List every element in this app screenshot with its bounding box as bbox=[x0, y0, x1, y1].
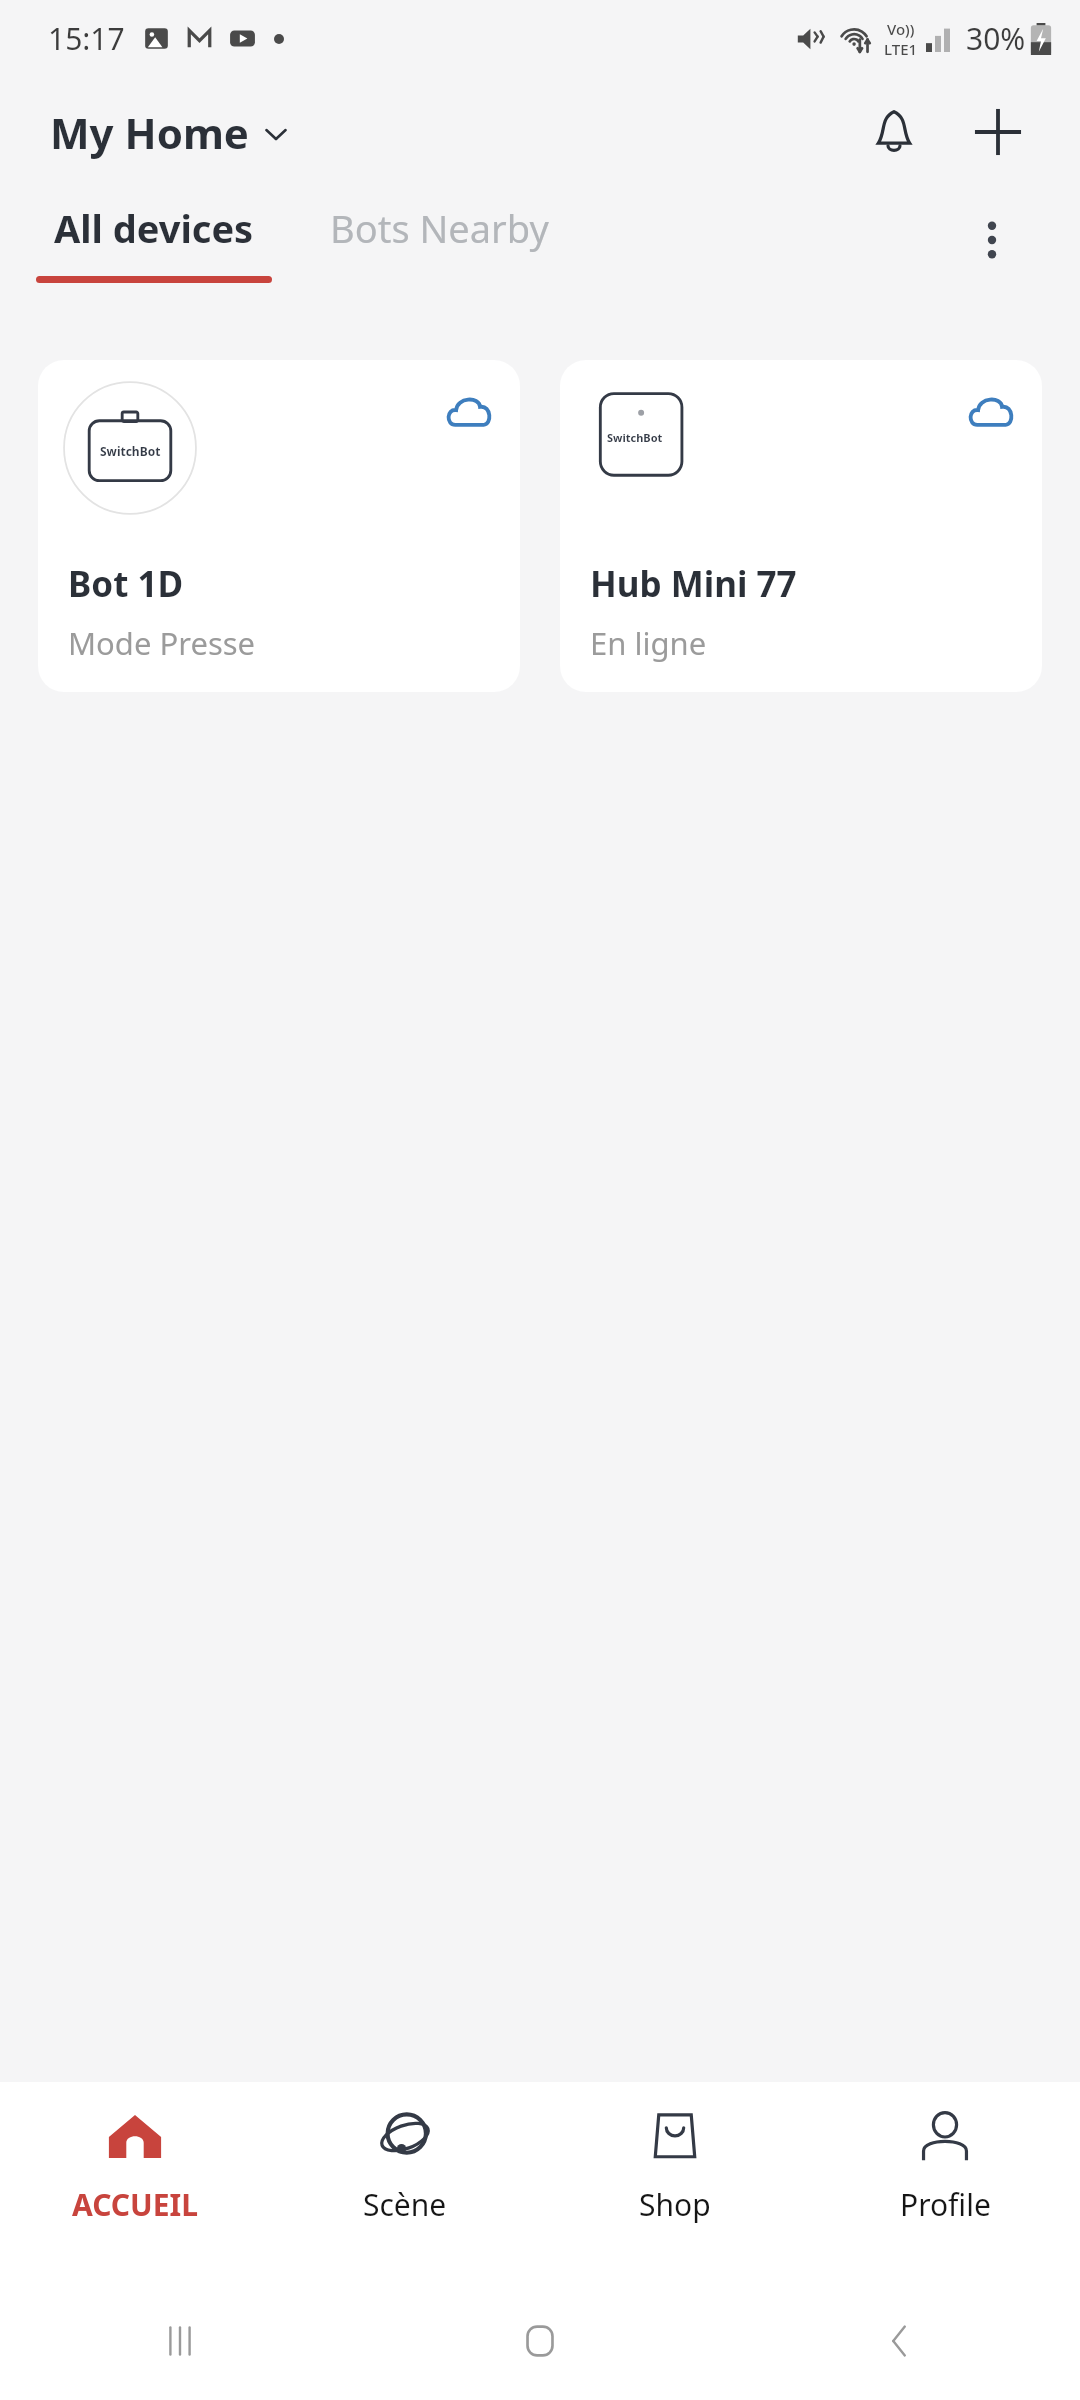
staticText: En ligne bbox=[590, 622, 707, 664]
button[interactable]: Scène bbox=[270, 2082, 540, 2225]
staticText: ACCUEIL bbox=[72, 2184, 198, 2225]
staticText: SwitchBot bbox=[607, 430, 663, 445]
staticText: Mode Presse bbox=[68, 622, 256, 664]
staticText: Hub Mini 77 bbox=[590, 560, 797, 608]
button[interactable]: All devices bbox=[0, 188, 308, 283]
staticText: Vo)) bbox=[887, 19, 915, 39]
button[interactable]: Notifications bbox=[856, 94, 932, 170]
staticText: SwitchBot bbox=[100, 443, 161, 459]
staticText: All devices bbox=[54, 202, 254, 254]
button[interactable]: My Home bbox=[0, 94, 309, 171]
button[interactable]: Bots Nearby bbox=[308, 188, 571, 254]
button[interactable]: Shop bbox=[540, 2082, 810, 2225]
staticText: Scène bbox=[363, 2184, 447, 2225]
staticText: 15:17 bbox=[48, 18, 125, 59]
staticText: My Home bbox=[50, 104, 249, 161]
staticText: LTE1 bbox=[884, 39, 918, 59]
button[interactable]: SwitchBot bbox=[560, 360, 1042, 692]
button[interactable]: Add device bbox=[960, 94, 1036, 170]
button[interactable]: More options bbox=[950, 198, 1034, 282]
staticText: Bots Nearby bbox=[330, 202, 549, 254]
staticText: Shop bbox=[639, 2184, 711, 2225]
staticText: 30% bbox=[966, 18, 1026, 59]
button[interactable]: SwitchBot bbox=[38, 360, 520, 692]
button[interactable]: ACCUEIL bbox=[0, 2082, 270, 2225]
staticText: Profile bbox=[900, 2184, 991, 2225]
button[interactable]: Profile bbox=[810, 2082, 1080, 2225]
staticText: Bot 1D bbox=[68, 560, 184, 608]
